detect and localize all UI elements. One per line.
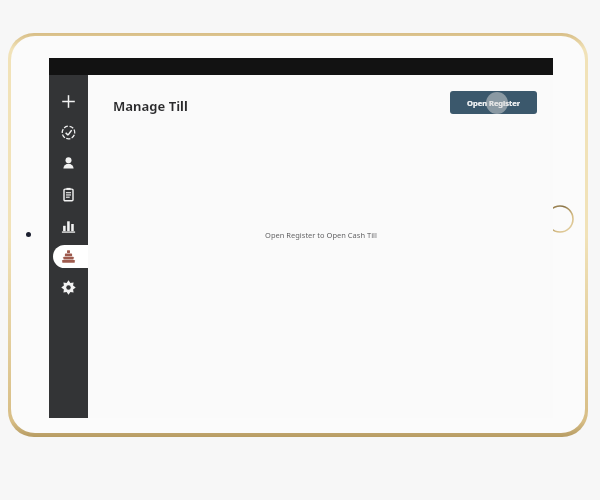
button[interactable]: Open Register bbox=[450, 91, 537, 114]
button[interactable]: Settings bbox=[49, 272, 88, 303]
other: Home bbox=[546, 205, 574, 233]
button[interactable]: Customers bbox=[49, 148, 88, 179]
staticText: Open Register bbox=[467, 98, 521, 108]
staticText: Open Register to Open Cash Till bbox=[265, 230, 377, 240]
button[interactable]: Tasks bbox=[49, 117, 88, 148]
button[interactable]: Reports bbox=[49, 210, 88, 241]
button[interactable]: Manage Till bbox=[49, 241, 88, 272]
button[interactable]: Add bbox=[49, 86, 88, 117]
staticText: Manage Till bbox=[113, 97, 188, 115]
button[interactable]: Orders bbox=[49, 179, 88, 210]
